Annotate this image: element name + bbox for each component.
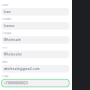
staticText: Surname (2, 18, 11, 21)
staticText: Ivan (4, 10, 11, 14)
staticText: Role (2, 46, 7, 49)
button[interactable]: Ivan (2, 8, 69, 16)
staticText: +79000000023 (4, 81, 28, 85)
staticText: Name (2, 4, 8, 7)
button[interactable]: Wholesale (2, 36, 69, 44)
button[interactable]: Wholesaler (2, 50, 69, 58)
staticText: Wholesale (4, 38, 21, 42)
button[interactable]: +79000000023 (2, 79, 69, 87)
staticText: Ivanov (4, 24, 15, 28)
staticText: Wholesaler (4, 52, 22, 56)
staticText: Email (2, 61, 8, 64)
staticText: Phone (2, 75, 8, 78)
button[interactable]: Ivanov (2, 22, 69, 30)
button[interactable]: wholesale@gmail.com (2, 65, 69, 73)
staticText: Company (2, 32, 11, 35)
staticText: wholesale@gmail.com (4, 67, 40, 71)
